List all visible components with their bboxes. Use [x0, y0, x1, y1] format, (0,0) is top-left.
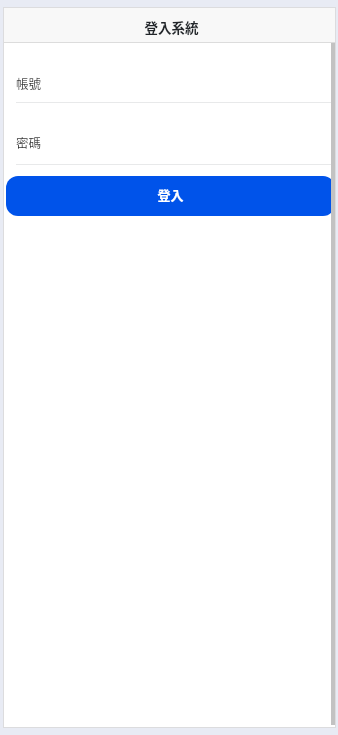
staticText: 密碼 [16, 133, 335, 151]
button[interactable]: 登入 [6, 176, 335, 216]
staticText: 帳號 [16, 74, 335, 92]
button[interactable]: 帳號 [4, 75, 335, 103]
staticText: 登入系統 [8, 17, 335, 37]
button[interactable]: 密碼 [4, 134, 335, 165]
staticText: 登入 [6, 185, 335, 204]
